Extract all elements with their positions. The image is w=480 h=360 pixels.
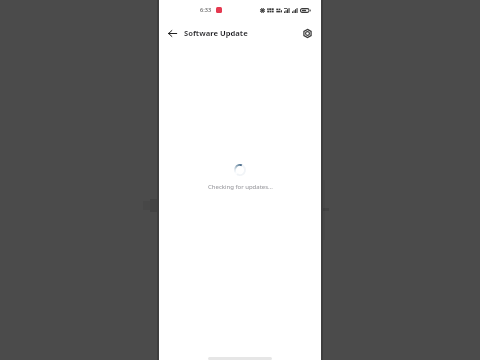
staticText: 6:33 — [200, 6, 212, 14]
button[interactable]: Settings — [299, 25, 315, 41]
button[interactable]: Back — [164, 25, 180, 41]
staticText: Checking for updates... — [208, 183, 273, 191]
staticText: Software Update — [184, 28, 248, 38]
